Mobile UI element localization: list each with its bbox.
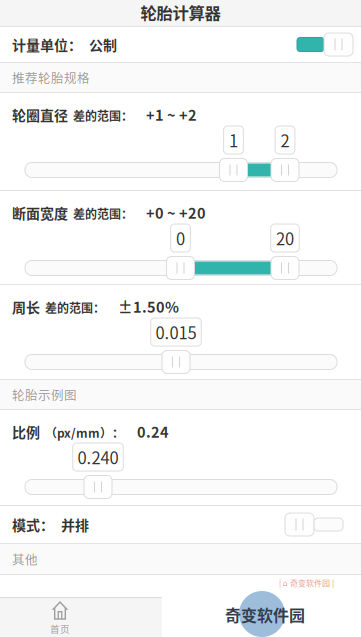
staticText: 比例 — [12, 422, 40, 442]
staticText: 计量单位： — [12, 34, 82, 55]
staticText: 奇变软件园 — [225, 603, 305, 626]
staticText: 轮圈直径 — [12, 105, 68, 125]
staticText: 差的范围： — [73, 205, 133, 222]
staticText: 推荐轮胎规格 — [12, 68, 90, 87]
button[interactable]: 模式： — [0, 506, 361, 543]
staticText: 0.015 — [155, 320, 196, 344]
staticText: （px/mm）： — [45, 424, 124, 441]
button[interactable]: 计量单位： — [0, 27, 361, 62]
staticText: 0.240 — [77, 445, 118, 469]
button[interactable]: 首页 — [0, 598, 120, 637]
staticText: +0 ~ +20 — [146, 202, 206, 223]
staticText: | ⌂ 奇变软件园 | — [279, 577, 334, 589]
staticText: 公制 — [89, 34, 117, 55]
staticText: +1 ~ +2 — [146, 104, 197, 125]
staticText: 其他 — [12, 550, 38, 568]
staticText: 轮胎计算器 — [140, 0, 220, 24]
staticText: 0 — [176, 226, 185, 250]
staticText: ±1.50% — [118, 296, 179, 317]
staticText: 0.24 — [137, 421, 169, 442]
staticText: 并排 — [61, 514, 89, 535]
staticText: 2 — [280, 128, 289, 152]
staticText: 差的范围： — [45, 299, 105, 316]
staticText: 20 — [276, 226, 294, 250]
staticText: 周长 — [12, 297, 40, 317]
staticText: 断面宽度 — [12, 203, 68, 223]
staticText: 首页 — [50, 622, 70, 635]
staticText: 差的范围： — [73, 107, 133, 124]
staticText: 模式： — [12, 514, 54, 535]
staticText: 1 — [229, 128, 238, 152]
staticText: 轮胎示例图 — [12, 385, 77, 404]
